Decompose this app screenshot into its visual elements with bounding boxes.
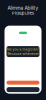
staticText: Pickup Lines [12,11,34,16]
staticText: Are you a magician? [6,47,39,51]
staticText: Alimma Ability [7,5,38,11]
button[interactable]: Generate pickup line [4,81,41,85]
button[interactable]: Copy line [4,87,41,92]
button[interactable]: Category [19,32,27,34]
staticText: Because whenever [7,52,38,56]
